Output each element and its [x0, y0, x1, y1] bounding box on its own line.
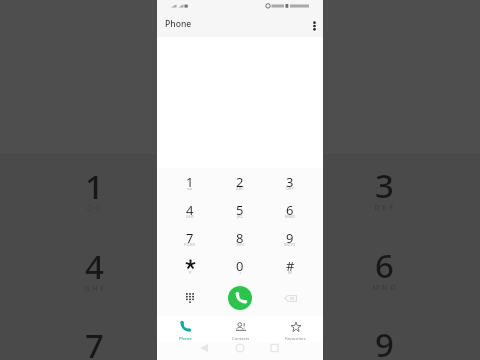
staticText: MNO: [372, 282, 399, 292]
button[interactable]: 5: [215, 196, 265, 224]
button[interactable]: 7: [165, 224, 215, 252]
staticText: 2: [236, 173, 244, 191]
staticText: MNO: [285, 214, 296, 219]
button[interactable]: Phone: [157, 316, 213, 342]
button[interactable]: Call: [228, 286, 252, 310]
button[interactable]: 0: [215, 252, 265, 280]
staticText: Phone: [165, 18, 192, 30]
staticText: Favourites: [285, 336, 306, 342]
staticText: Phone: [179, 336, 192, 342]
staticText: 5: [236, 201, 244, 219]
staticText: 4: [85, 244, 104, 288]
button[interactable]: 3: [265, 168, 315, 196]
staticText: 6: [286, 201, 294, 219]
staticText: PQRS: [184, 242, 196, 247]
staticText: Contacts: [232, 336, 250, 342]
staticText: +: [239, 270, 242, 275]
button[interactable]: P: [165, 252, 215, 280]
button[interactable]: 1: [165, 168, 215, 196]
staticText: WXYZ: [284, 242, 296, 247]
staticText: 9: [375, 322, 394, 360]
button[interactable]: 6: [265, 196, 315, 224]
button[interactable]: 2: [215, 168, 265, 196]
button[interactable]: 9: [265, 224, 315, 252]
staticText: W: [288, 270, 292, 275]
staticText: oo: [187, 186, 193, 191]
staticText: JKL: [237, 214, 244, 219]
staticText: 1: [186, 173, 194, 191]
staticText: 3: [286, 173, 294, 191]
button[interactable]: Favourites: [268, 316, 323, 342]
staticText: 1: [85, 164, 104, 208]
staticText: 6: [375, 243, 394, 287]
button[interactable]: Contacts: [213, 316, 268, 342]
button[interactable]: More options: [305, 14, 323, 37]
button[interactable]: Backspace: [265, 280, 315, 316]
staticText: DEF: [374, 202, 396, 212]
staticText: 4: [186, 201, 194, 219]
staticText: 3: [375, 163, 394, 207]
staticText: DEF: [286, 186, 294, 191]
staticText: GHI: [84, 283, 106, 293]
staticText: ABC: [236, 186, 245, 191]
staticText: GHI: [186, 214, 194, 219]
staticText: 0: [236, 257, 244, 275]
staticText: TUV: [236, 242, 245, 247]
staticText: P: [189, 270, 192, 275]
staticText: 9: [286, 229, 294, 247]
button[interactable]: #: [265, 252, 315, 280]
staticText: 8: [236, 229, 244, 247]
staticText: 7: [186, 229, 194, 247]
staticText: #: [286, 257, 295, 275]
staticText: 7: [85, 323, 104, 360]
button[interactable]: 8: [215, 224, 265, 252]
button[interactable]: 4: [165, 196, 215, 224]
button[interactable]: Keypad: [165, 280, 215, 316]
